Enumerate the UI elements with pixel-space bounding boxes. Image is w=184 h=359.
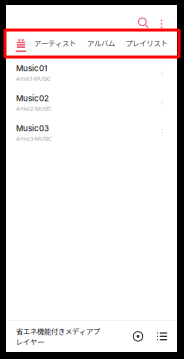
staticText: Artist1-MUSIC [16,76,51,82]
button[interactable]: Search [135,5,151,30]
staticText: Music02 [16,93,49,103]
button[interactable]: アルバム [82,30,120,56]
button[interactable]: Play [126,321,150,352]
button[interactable]: Music01 [6,56,177,86]
staticText: Music03 [16,123,49,133]
button[interactable]: プレイリスト [120,30,172,56]
staticText: アーティスト [34,38,76,48]
button[interactable]: Library [10,30,32,56]
staticText: アルバム [87,38,115,48]
staticText: Artist2-MUSIC [16,106,52,112]
button[interactable]: Queue [150,321,174,352]
staticText: プレイリスト [125,38,167,48]
button[interactable]: More options [151,5,171,30]
button[interactable]: アーティスト [32,30,82,56]
staticText: Music01 [16,63,47,73]
button[interactable]: Music02 [6,86,177,116]
staticText: 省エネ機能付きメディアプレイヤー [16,326,100,347]
button[interactable]: Music03 [6,116,177,146]
staticText: Artist3-MUSIC [16,136,52,142]
